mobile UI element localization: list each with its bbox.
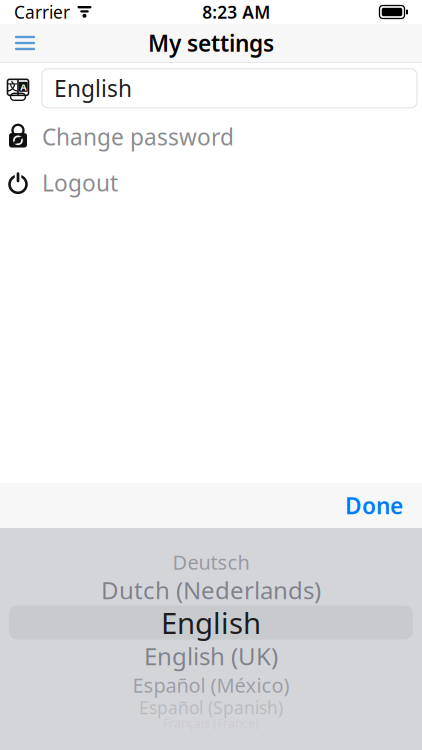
button[interactable]: Change password: [0, 114, 422, 160]
button[interactable]: English: [42, 69, 417, 108]
button[interactable]: Done: [329, 478, 422, 532]
staticText: Carrier: [14, 0, 70, 23]
staticText: English: [161, 603, 261, 642]
staticText: Dutch (Nederlands): [101, 574, 321, 606]
button[interactable]: Menu: [0, 24, 50, 62]
staticText: Español (México): [132, 672, 289, 698]
staticText: Logout: [42, 168, 118, 198]
staticText: Done: [345, 490, 403, 520]
staticText: English: [54, 73, 132, 103]
staticText: 8:23 AM: [202, 0, 270, 23]
staticText: Change password: [42, 122, 234, 152]
staticText: My settings: [148, 28, 274, 58]
staticText: Français (France): [163, 715, 259, 731]
staticText: English (UK): [144, 640, 278, 672]
staticText: 文: [7, 80, 18, 93]
button[interactable]: Logout: [0, 160, 422, 206]
staticText: Español (Spanish): [139, 696, 283, 719]
staticText: Deutsch: [172, 549, 249, 575]
staticText: A: [20, 81, 26, 93]
